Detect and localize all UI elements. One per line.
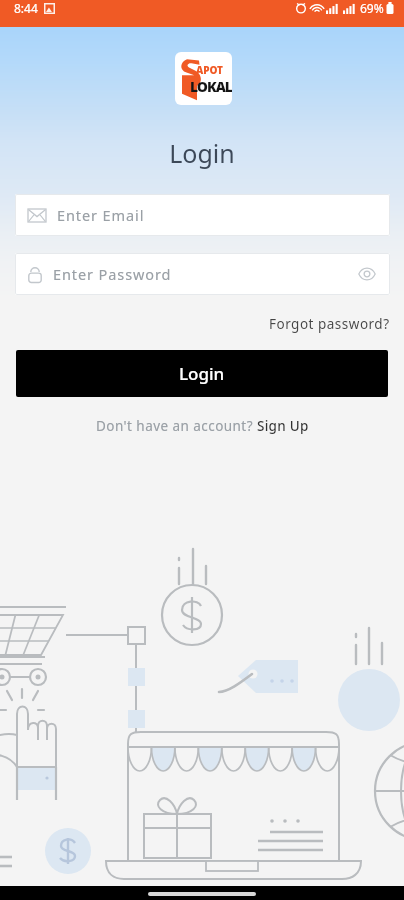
button[interactable]: Sign Up (257, 417, 309, 435)
staticText: Login (179, 362, 225, 385)
staticText: Enter Password (53, 264, 172, 284)
button[interactable]: Enter Email (15, 194, 390, 236)
staticText: 69% (360, 0, 384, 16)
staticText: Don't have an account? (96, 417, 257, 435)
button[interactable]: Enter Password (15, 253, 390, 295)
button[interactable]: Forgot password? (265, 312, 394, 336)
staticText: Sign Up (257, 417, 309, 435)
button[interactable]: Show password (356, 266, 378, 282)
staticText: 8:44 (14, 0, 38, 16)
staticText: Login (169, 136, 235, 170)
staticText: Enter Email (57, 205, 145, 225)
button[interactable]: Login (16, 350, 388, 397)
staticText: APOT (196, 63, 223, 77)
staticText: LOKAL (190, 77, 232, 96)
staticText: Forgot password? (269, 315, 390, 333)
